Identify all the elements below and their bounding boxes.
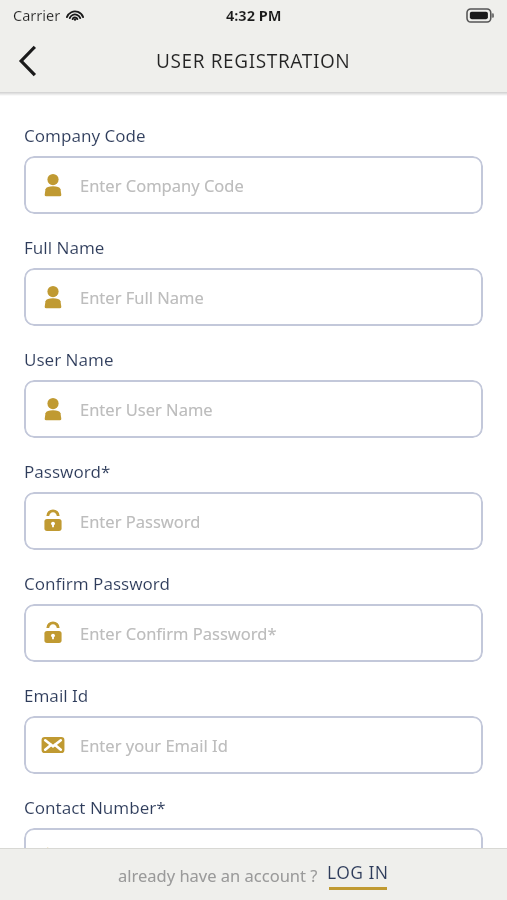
staticText: Enter Full Name (80, 286, 204, 308)
staticText: Enter User Name (80, 398, 213, 420)
staticText: Enter your Email Id (80, 734, 228, 756)
staticText: LOG IN (327, 860, 389, 884)
staticText: Company Code (24, 124, 146, 147)
button[interactable]: LOG IN (327, 860, 389, 890)
staticText: already have an account ? (118, 864, 318, 886)
staticText: Enter Confirm Password* (80, 622, 277, 644)
staticText: User Name (24, 348, 114, 371)
staticText: 4:32 PM (226, 5, 282, 25)
staticText: Carrier (13, 5, 61, 25)
button[interactable]: Back (0, 33, 56, 89)
staticText: Enter your Contact Number (80, 846, 294, 868)
button[interactable]: Enter Company Code (24, 156, 483, 214)
staticText: Enter Password (80, 510, 201, 532)
button[interactable]: Enter your Email Id (24, 716, 483, 774)
staticText: Full Name (24, 236, 105, 259)
staticText: USER REGISTRATION (156, 48, 351, 74)
staticText: Email Id (24, 684, 89, 707)
button[interactable]: Enter Password (24, 492, 483, 550)
button[interactable]: Enter your Contact Number (24, 828, 483, 886)
button[interactable]: Enter User Name (24, 380, 483, 438)
staticText: Contact Number* (24, 796, 166, 819)
staticText: Enter Company Code (80, 174, 244, 196)
button[interactable]: Enter Confirm Password* (24, 604, 483, 662)
button[interactable]: Enter Full Name (24, 268, 483, 326)
staticText: Password* (24, 460, 111, 483)
staticText: Confirm Password (24, 572, 170, 595)
